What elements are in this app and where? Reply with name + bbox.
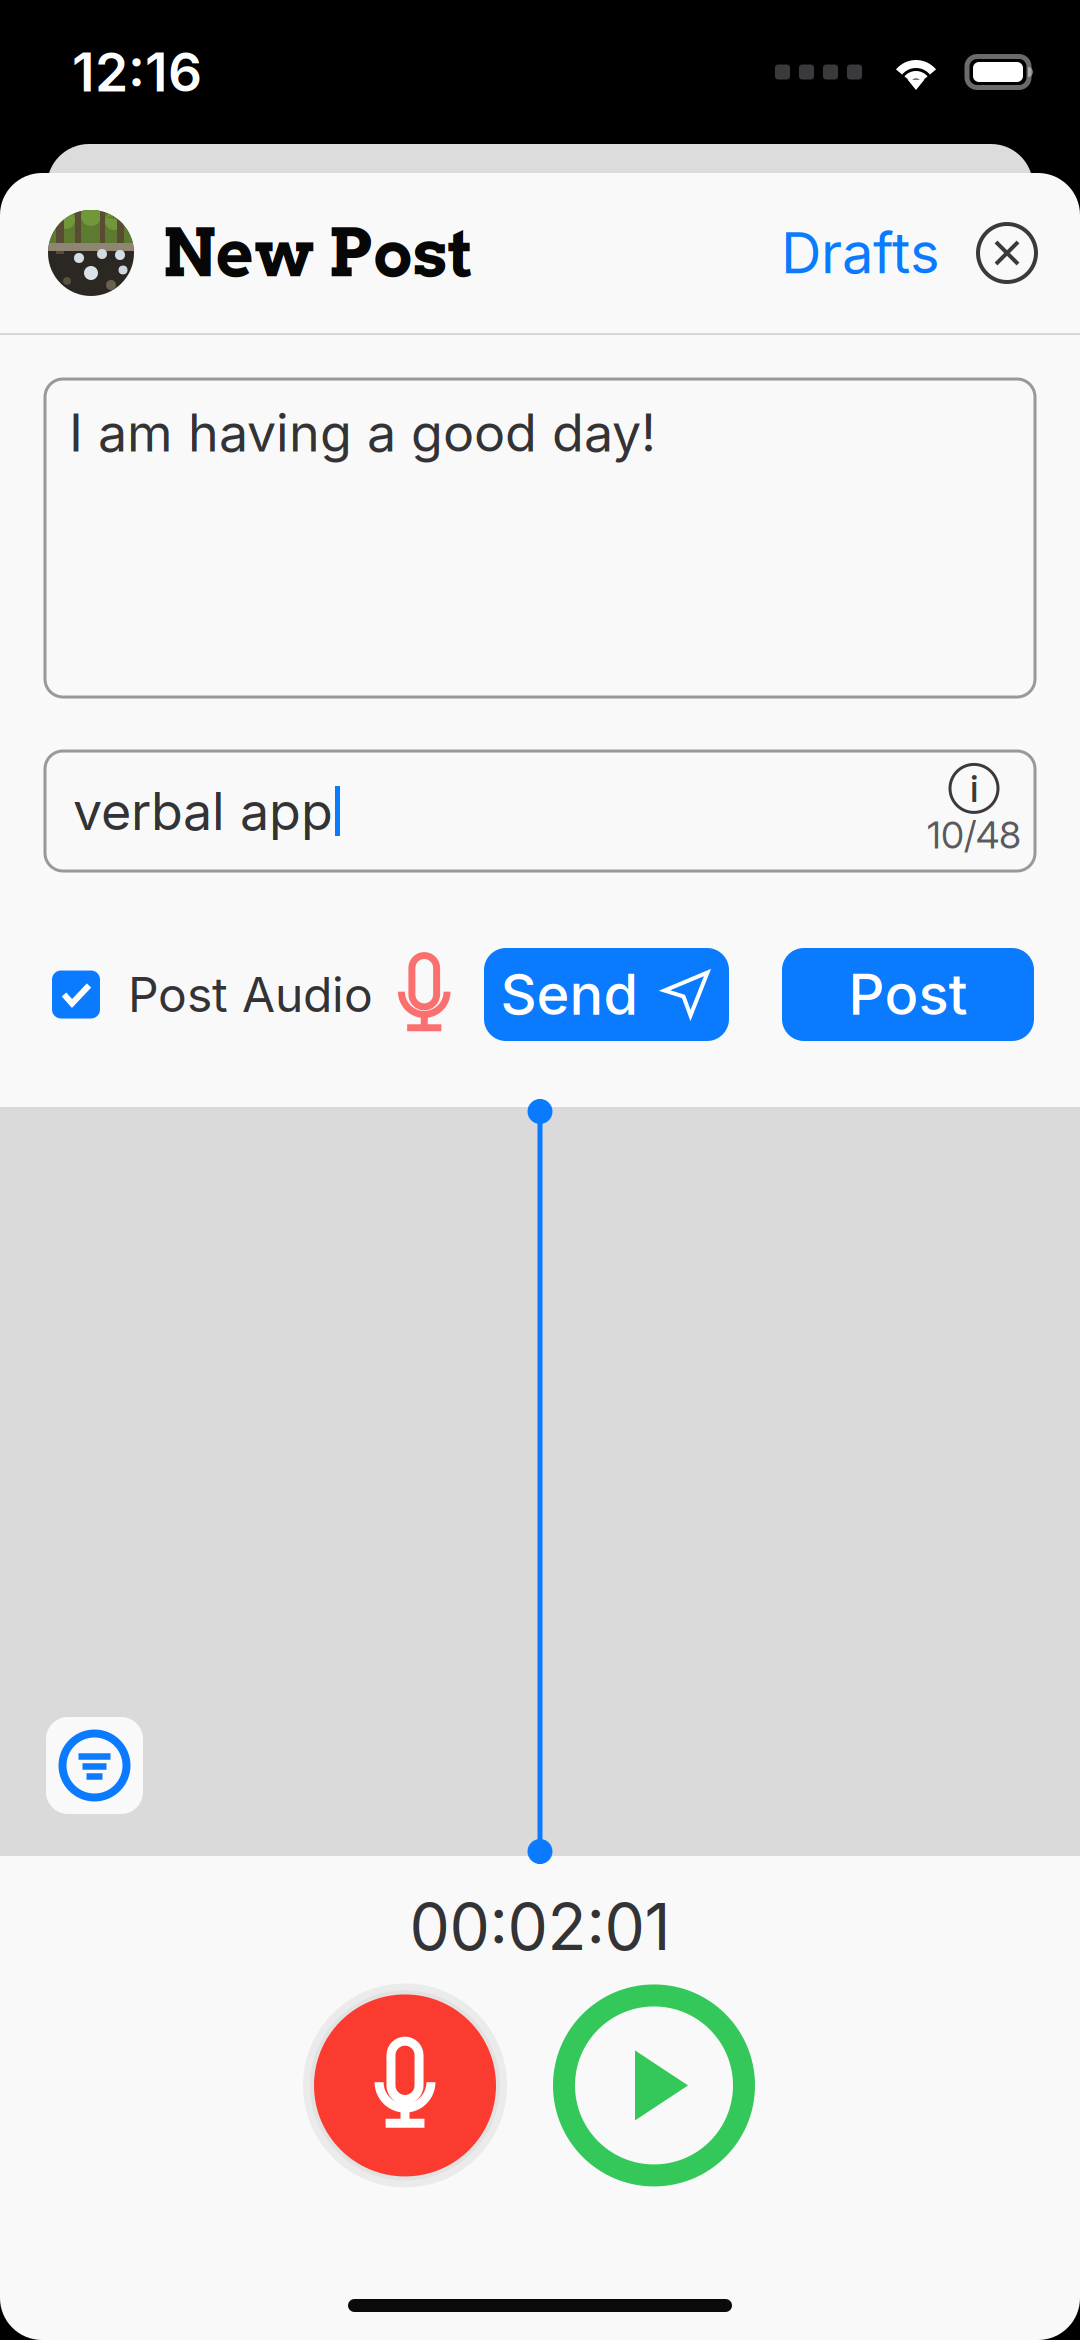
staticText: Send [500, 961, 638, 1028]
staticText: Post [848, 961, 967, 1028]
staticText: i [970, 766, 978, 811]
staticText: verbal app [73, 779, 333, 842]
button[interactable]: Close [978, 224, 1036, 282]
staticText: Drafts [781, 219, 940, 287]
button[interactable]: Transcript [46, 1717, 143, 1814]
staticText: 12:16 [72, 40, 202, 104]
staticText: Post Audio [128, 965, 373, 1024]
staticText: 00:02:01 [409, 1888, 670, 1965]
button[interactable]: Play [553, 1984, 755, 2186]
button[interactable]: Post [782, 948, 1034, 1041]
button[interactable]: Post Audio [52, 953, 457, 1036]
staticText: I am having a good day! [69, 401, 656, 464]
staticText: 10/48 [927, 812, 1021, 858]
button[interactable]: Drafts [781, 219, 940, 287]
button[interactable]: Record [303, 1983, 507, 2187]
button[interactable]: Send [484, 948, 729, 1041]
staticText: New Post [162, 213, 474, 292]
